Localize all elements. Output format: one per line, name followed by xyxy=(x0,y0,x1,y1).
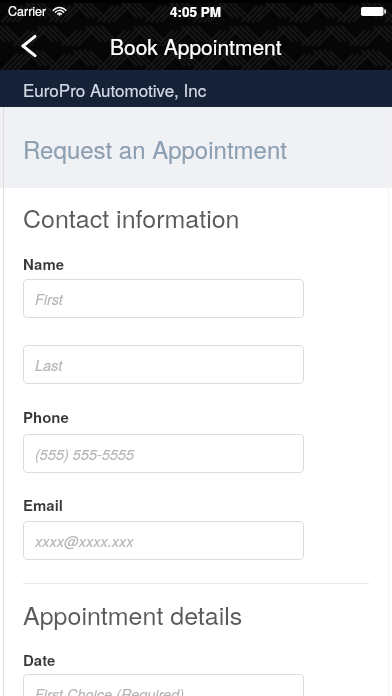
button[interactable]: EuroPro Automotive, Inc xyxy=(0,70,392,107)
staticText: Date xyxy=(23,649,56,670)
button[interactable]: Back xyxy=(0,22,58,70)
button[interactable]: xxxx@xxxx.xxx xyxy=(23,521,304,560)
staticText: (555) 555-5555 xyxy=(35,444,135,464)
button[interactable]: First Choice (Required) xyxy=(23,674,304,696)
staticText: Book Appointment xyxy=(110,31,282,61)
staticText: Email xyxy=(23,494,64,515)
staticText: First xyxy=(35,289,63,309)
staticText: Name xyxy=(23,253,65,274)
staticText: Appointment details xyxy=(23,596,243,632)
staticText: Phone xyxy=(23,406,69,427)
staticText: Contact information xyxy=(23,199,240,235)
staticText: Last xyxy=(35,355,63,375)
staticText: xxxx@xxxx.xxx xyxy=(35,531,134,551)
button[interactable]: First xyxy=(23,279,304,318)
button[interactable]: Last xyxy=(23,345,304,384)
staticText: Carrier xyxy=(8,2,47,20)
button[interactable]: (555) 555-5555 xyxy=(23,434,304,473)
staticText: Request an Appointment xyxy=(23,131,287,165)
staticText: 4:05 PM xyxy=(170,2,222,21)
staticText: First Choice (Required) xyxy=(35,684,185,696)
staticText: EuroPro Automotive, Inc xyxy=(23,77,207,101)
